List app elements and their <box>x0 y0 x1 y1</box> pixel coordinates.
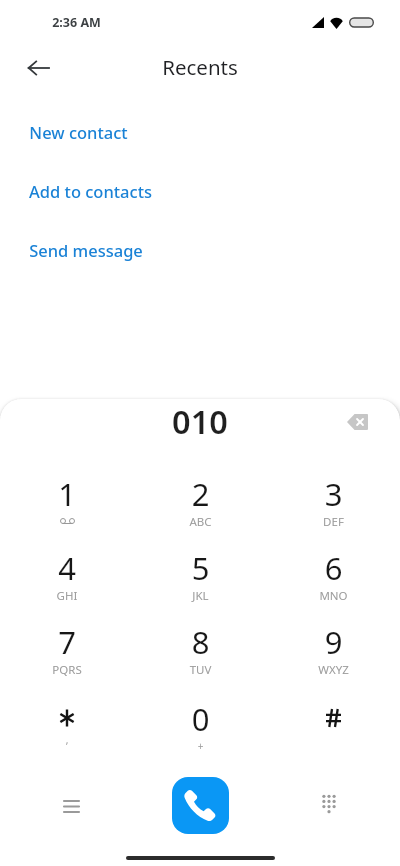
button[interactable]: 0 <box>134 693 267 767</box>
button[interactable]: 3 <box>267 471 400 545</box>
button[interactable]: Back <box>18 48 58 88</box>
staticText: + <box>134 739 267 753</box>
staticText: PQRS <box>0 662 134 678</box>
button[interactable]: 1 <box>0 471 134 545</box>
staticText: 4 <box>0 547 134 589</box>
button[interactable]: Send message <box>0 220 400 279</box>
staticText: 010 <box>172 399 228 443</box>
staticText: 9 <box>267 621 400 663</box>
button[interactable]: , <box>0 693 134 767</box>
staticText: New contact <box>29 121 128 143</box>
staticText: DEF <box>267 514 400 530</box>
staticText: 0 <box>134 698 267 740</box>
staticText: Recents <box>162 53 238 81</box>
staticText: 2 <box>134 473 267 515</box>
button[interactable]: Backspace <box>337 402 377 442</box>
staticText: JKL <box>134 588 267 604</box>
button[interactable]: Call <box>172 777 229 834</box>
staticText: 8 <box>134 621 267 663</box>
button[interactable]: Dialpad <box>309 784 349 824</box>
button[interactable]: 2 <box>134 471 267 545</box>
staticText: MNO <box>267 588 400 604</box>
staticText: TUV <box>134 662 267 678</box>
staticText: 1 <box>0 473 134 515</box>
staticText: 3 <box>267 473 400 515</box>
button[interactable]: 8 <box>134 619 267 693</box>
staticText: Send message <box>29 239 143 261</box>
button[interactable]: 5 <box>134 545 267 619</box>
button[interactable]: 9 <box>267 619 400 693</box>
button[interactable] <box>267 693 400 767</box>
staticText: 7 <box>0 621 134 663</box>
button[interactable]: 6 <box>267 545 400 619</box>
button[interactable]: Add to contacts <box>0 161 400 220</box>
button[interactable]: New contact <box>0 102 400 161</box>
staticText: 2:36 AM <box>52 14 101 31</box>
button[interactable]: 4 <box>0 545 134 619</box>
button[interactable]: 7 <box>0 619 134 693</box>
staticText: ABC <box>134 514 267 530</box>
button[interactable]: Call log <box>51 786 91 826</box>
staticText: WXYZ <box>267 662 400 678</box>
staticText: 5 <box>134 547 267 589</box>
staticText: 6 <box>267 547 400 589</box>
staticText: Add to contacts <box>29 180 152 202</box>
staticText: GHI <box>0 588 134 604</box>
